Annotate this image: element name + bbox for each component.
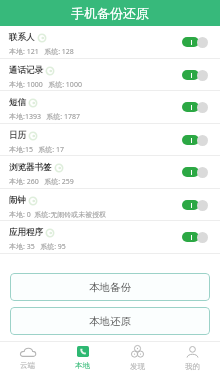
- staticText: 手机备份还原: [71, 5, 149, 21]
- staticText: 通话记录: [9, 65, 43, 76]
- button[interactable]: Toggle: [182, 232, 208, 244]
- staticText: 本地还原: [89, 315, 131, 328]
- button[interactable]: 通话记录: [0, 59, 220, 92]
- staticText: 闹钟: [9, 195, 26, 206]
- staticText: 本地: 260 系统: 259: [9, 177, 74, 187]
- staticText: 云端: [20, 361, 35, 370]
- button[interactable]: Toggle: [182, 135, 208, 147]
- button[interactable]: Toggle: [182, 200, 208, 212]
- button[interactable]: Cloud: [0, 342, 55, 374]
- staticText: 日历: [9, 130, 26, 141]
- staticText: 本地:1393 系统: 1787: [9, 112, 81, 122]
- staticText: 本地: [75, 361, 90, 370]
- staticText: 发现: [130, 362, 145, 371]
- staticText: 短信: [9, 97, 26, 108]
- staticText: 我的: [185, 362, 200, 371]
- button[interactable]: 应用程序: [0, 221, 220, 254]
- button[interactable]: Profile: [165, 342, 220, 374]
- staticText: 本地备份: [89, 281, 131, 294]
- staticText: 浏览器书签: [9, 162, 52, 173]
- button[interactable]: Toggle: [182, 37, 208, 49]
- button[interactable]: Toggle: [182, 102, 208, 114]
- staticText: 本地: 1000 系统: 1000: [9, 80, 82, 90]
- staticText: 本地: 121 系统: 128: [9, 47, 74, 57]
- button[interactable]: 日历: [0, 124, 220, 157]
- button[interactable]: Discover: [110, 342, 165, 374]
- staticText: 本地: 0 系统:无闹铃或未被授权: [9, 210, 107, 220]
- staticText: 本地: 35 系统: 95: [9, 242, 66, 252]
- button[interactable]: 短信: [0, 91, 220, 124]
- button[interactable]: 本地备份: [10, 273, 210, 301]
- staticText: 本地:15 系统: 17: [9, 145, 65, 155]
- button[interactable]: 本地还原: [10, 307, 210, 335]
- button[interactable]: 闹钟: [0, 189, 220, 222]
- button[interactable]: Local: [55, 342, 110, 374]
- button[interactable]: 浏览器书签: [0, 156, 220, 189]
- staticText: 应用程序: [9, 227, 43, 238]
- button[interactable]: Toggle: [182, 167, 208, 179]
- button[interactable]: Toggle: [182, 70, 208, 82]
- button[interactable]: 联系人: [0, 26, 220, 59]
- staticText: 联系人: [9, 32, 35, 43]
